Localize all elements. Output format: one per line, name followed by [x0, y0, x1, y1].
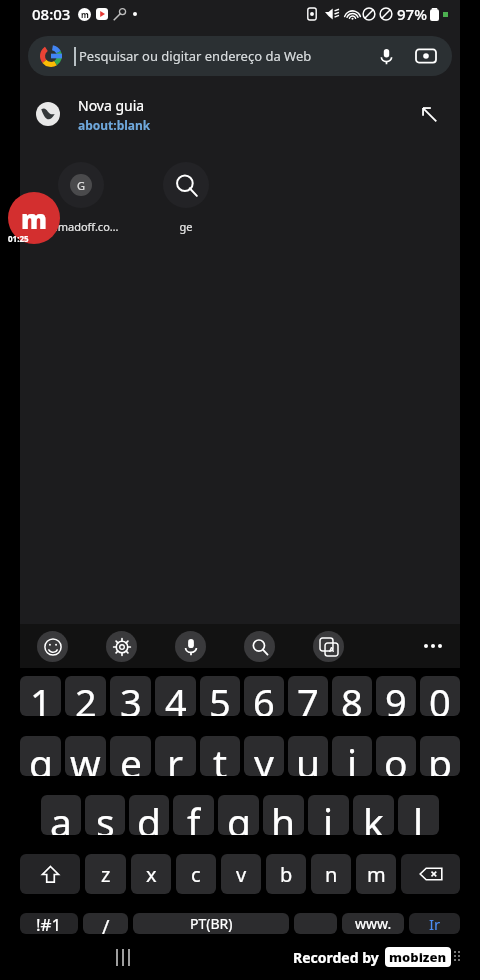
staticText: mobizen [389, 948, 447, 966]
button[interactable]: q [20, 736, 61, 776]
staticText: o [384, 736, 408, 776]
staticText: Ir [429, 914, 441, 934]
staticText: Gemadoff.com... [42, 219, 120, 234]
staticText: d [137, 795, 161, 835]
button[interactable]: ge [147, 162, 225, 234]
staticText: k [363, 795, 384, 835]
staticText: u [296, 736, 321, 776]
button[interactable]: p [420, 736, 460, 776]
staticText: b [280, 861, 293, 888]
staticText: h [271, 795, 296, 835]
staticText: j [323, 795, 334, 835]
staticText: PT(BR) [190, 914, 233, 933]
button[interactable]: a [41, 795, 81, 835]
button[interactable]: Edit query [414, 99, 444, 129]
staticText: m [81, 9, 89, 20]
staticText: e [120, 736, 142, 776]
button[interactable]: www. [342, 913, 404, 934]
button[interactable]: x [131, 854, 171, 894]
staticText: l [413, 795, 424, 835]
button[interactable]: o [376, 736, 416, 776]
button[interactable]: 9 [376, 676, 416, 716]
staticText: / [102, 913, 110, 934]
button[interactable]: Voice search [372, 42, 400, 70]
staticText: !#1 [36, 913, 62, 934]
staticText: 8 [341, 676, 363, 716]
staticText: 01:25 [8, 233, 29, 244]
button[interactable]: PT(BR) [133, 913, 289, 934]
button[interactable]: s [85, 795, 125, 835]
button[interactable]: r [155, 736, 196, 776]
button[interactable]: Backspace [401, 854, 460, 894]
button[interactable]: 0 [420, 676, 460, 716]
button[interactable]: m [356, 854, 396, 894]
button[interactable]: g [218, 795, 259, 835]
staticText: 0 [429, 676, 451, 716]
button[interactable]: v [221, 854, 261, 894]
button[interactable]: n [311, 854, 351, 894]
staticText: 7 [297, 676, 319, 716]
staticText: m [367, 861, 386, 888]
button[interactable]: . [294, 913, 337, 934]
button[interactable]: Nova guia [20, 90, 460, 138]
button[interactable]: h [263, 795, 304, 835]
staticText: f [187, 795, 201, 835]
staticText: 3 [120, 676, 142, 716]
staticText: 9 [385, 676, 407, 716]
staticText: 5 [209, 676, 231, 716]
button[interactable]: 7 [288, 676, 328, 716]
staticText: x [146, 861, 157, 888]
button[interactable]: t [200, 736, 240, 776]
button[interactable]: Pesquisar ou digitar endereço da Web [28, 36, 452, 76]
button[interactable]: Search [244, 631, 275, 662]
button[interactable]: l [398, 795, 439, 835]
staticText: Recorded by [293, 948, 379, 967]
button[interactable]: Translate [313, 631, 344, 662]
button[interactable]: y [244, 736, 284, 776]
staticText: y [254, 736, 274, 776]
button[interactable]: G [42, 162, 120, 234]
button[interactable]: Voice input [175, 631, 206, 662]
button[interactable]: 4 [155, 676, 196, 716]
staticText: ge [147, 219, 225, 234]
button[interactable]: 3 [110, 676, 151, 716]
staticText: G [77, 178, 86, 193]
button[interactable]: !#1 [20, 913, 78, 934]
button[interactable]: 8 [332, 676, 372, 716]
button[interactable]: 6 [244, 676, 284, 716]
staticText: s [96, 795, 115, 835]
button[interactable]: Recent apps [108, 941, 138, 974]
button[interactable]: f [173, 795, 214, 835]
button[interactable]: z [85, 854, 126, 894]
staticText: 1 [30, 676, 52, 716]
staticText: 4 [165, 676, 187, 716]
button[interactable]: b [266, 854, 306, 894]
staticText: t [213, 736, 228, 776]
staticText: Nova guia [78, 96, 145, 115]
button[interactable]: d [129, 795, 169, 835]
button[interactable]: w [65, 736, 106, 776]
staticText: www. [355, 914, 392, 933]
button[interactable]: Lens camera search [412, 42, 440, 70]
staticText: Pesquisar ou digitar endereço da Web [79, 47, 372, 65]
staticText: 08:03 [32, 4, 71, 24]
button[interactable]: / [83, 913, 128, 934]
staticText: 6 [253, 676, 275, 716]
button[interactable]: Ir [409, 913, 460, 934]
button[interactable]: k [353, 795, 394, 835]
button[interactable]: c [176, 854, 216, 894]
button[interactable]: 5 [200, 676, 240, 716]
button[interactable]: j [308, 795, 349, 835]
button[interactable]: i [332, 736, 372, 776]
staticText: p [428, 736, 452, 776]
button[interactable]: e [110, 736, 151, 776]
button[interactable]: Settings [106, 631, 137, 662]
button[interactable]: u [288, 736, 328, 776]
button[interactable]: Emoji [37, 631, 68, 662]
button[interactable]: Mobizen recorder [8, 192, 64, 248]
button[interactable]: More options [418, 631, 448, 661]
button[interactable]: 2 [65, 676, 106, 716]
button[interactable]: 1 [20, 676, 61, 716]
button[interactable]: Shift [20, 854, 80, 894]
staticText: v [236, 861, 247, 888]
